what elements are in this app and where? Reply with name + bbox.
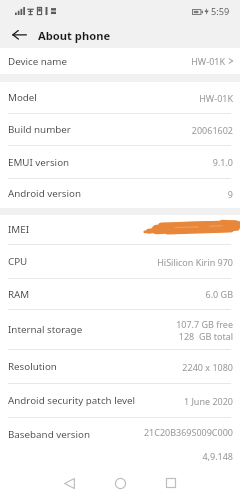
staticText: 21C20B369S009C000 [143, 426, 233, 438]
staticText: CPU [8, 255, 28, 268]
staticText: Internal storage [8, 323, 83, 336]
button[interactable]: Android security patch level [0, 384, 240, 417]
button[interactable]: Back [53, 467, 85, 497]
staticText: Model [8, 91, 37, 104]
button[interactable]: Device name [0, 48, 240, 74]
staticText: 4,9.148 [202, 450, 233, 462]
button[interactable]: IMEI [0, 215, 240, 244]
button[interactable]: Build number [0, 114, 240, 145]
button[interactable]: Resolution [0, 350, 240, 383]
staticText: HiSilicon Kirin 970 [157, 256, 233, 268]
staticText: 9 [227, 188, 233, 200]
staticText: 128 GB total [178, 330, 233, 342]
button[interactable]: Android version [0, 179, 240, 208]
staticText: EMUI version [8, 156, 70, 169]
staticText: 1 June 2020 [183, 395, 233, 407]
staticText: HW-01K [191, 55, 225, 67]
button[interactable]: Navigate up [8, 24, 30, 46]
staticText: 107.7 GB free [176, 318, 233, 330]
staticText: Build number [8, 123, 71, 136]
staticText: Android security patch level [8, 394, 136, 407]
staticText: About phone [38, 28, 111, 43]
staticText: Android version [8, 187, 81, 200]
button[interactable]: Internal storage [0, 310, 240, 349]
staticText: Device name [8, 55, 67, 68]
staticText: Resolution [8, 360, 57, 373]
staticText: 2240 x 1080 [182, 361, 233, 373]
button[interactable]: Recent apps [155, 467, 187, 497]
staticText: RAM [8, 288, 30, 301]
button[interactable]: EMUI version [0, 146, 240, 178]
staticText: 5:59 [211, 5, 230, 18]
button[interactable]: Baseband version [0, 418, 240, 464]
staticText: 20061602 [191, 124, 233, 136]
button[interactable]: CPU [0, 245, 240, 278]
button[interactable]: Home [104, 467, 136, 497]
staticText: 6.0 GB [205, 288, 233, 300]
staticText: 9.1.0 [212, 156, 233, 168]
staticText: Baseband version [8, 428, 90, 441]
staticText: IMEI [8, 223, 29, 236]
button[interactable]: RAM [0, 279, 240, 309]
staticText: HW-01K [199, 92, 233, 104]
button[interactable]: Model [0, 82, 240, 113]
